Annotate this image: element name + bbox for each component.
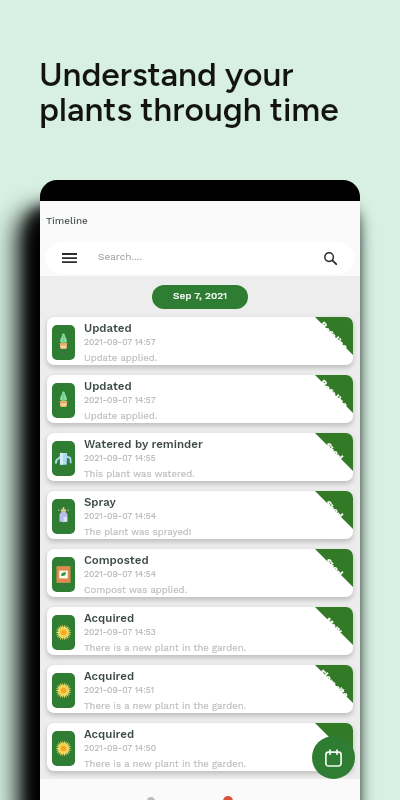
button[interactable]: Updated [47, 317, 353, 365]
button[interactable]: Composted [47, 549, 353, 597]
staticText: 2021-09-07 14:55 [84, 453, 156, 463]
staticText: Timeline [46, 215, 88, 227]
button[interactable]: Plants [120, 779, 200, 800]
staticText: There is a new plant in the garden. [84, 642, 247, 653]
staticText: This plant was watered. [84, 468, 195, 479]
other: Menu [62, 253, 77, 263]
button[interactable]: Open calendar [312, 736, 355, 779]
staticText: Updated [84, 321, 132, 334]
staticText: Update applied. [84, 410, 158, 421]
button[interactable]: Spray [47, 491, 353, 539]
staticText: Composted [84, 553, 149, 566]
staticText: plants through time [39, 89, 339, 129]
button[interactable]: Acquired [47, 723, 353, 771]
button[interactable]: Watered by reminder [47, 433, 353, 481]
staticText: 2021-09-07 14:57 [84, 395, 156, 405]
staticText: 2021-09-07 14:57 [84, 337, 156, 347]
staticText: 2021-09-07 14:50 [84, 743, 157, 753]
button[interactable]: Menu [45, 242, 355, 274]
staticText: Acquired [84, 727, 135, 740]
staticText: Acquired [84, 669, 135, 682]
button[interactable]: Acquired [47, 607, 353, 655]
button[interactable]: Updated [47, 375, 353, 423]
staticText: 2021-09-07 14:53 [84, 627, 156, 637]
staticText: Spray [84, 495, 116, 508]
staticText: 2021-09-07 14:51 [84, 685, 155, 695]
button[interactable]: Sep 7, 2021 [152, 285, 248, 309]
staticText: Search.... [98, 251, 143, 263]
staticText: There is a new plant in the garden. [84, 700, 247, 711]
staticText: The plant was sprayed! [84, 526, 192, 537]
staticText: Understand your [39, 54, 294, 94]
staticText: There is a new plant in the garden. [84, 758, 247, 769]
other: Search [324, 252, 340, 268]
staticText: 2021-09-07 14:54 [84, 569, 157, 579]
button[interactable]: Acquired [47, 665, 353, 713]
staticText: Watered by reminder [84, 437, 203, 450]
staticText: Acquired [84, 611, 135, 624]
staticText: Sep 7, 2021 [173, 290, 228, 302]
staticText: Updated [84, 379, 132, 392]
staticText: 2021-09-07 14:54 [84, 511, 157, 521]
staticText: Update applied. [84, 352, 158, 363]
button[interactable]: Garden [200, 779, 280, 800]
staticText: Compost was applied. [84, 584, 188, 595]
